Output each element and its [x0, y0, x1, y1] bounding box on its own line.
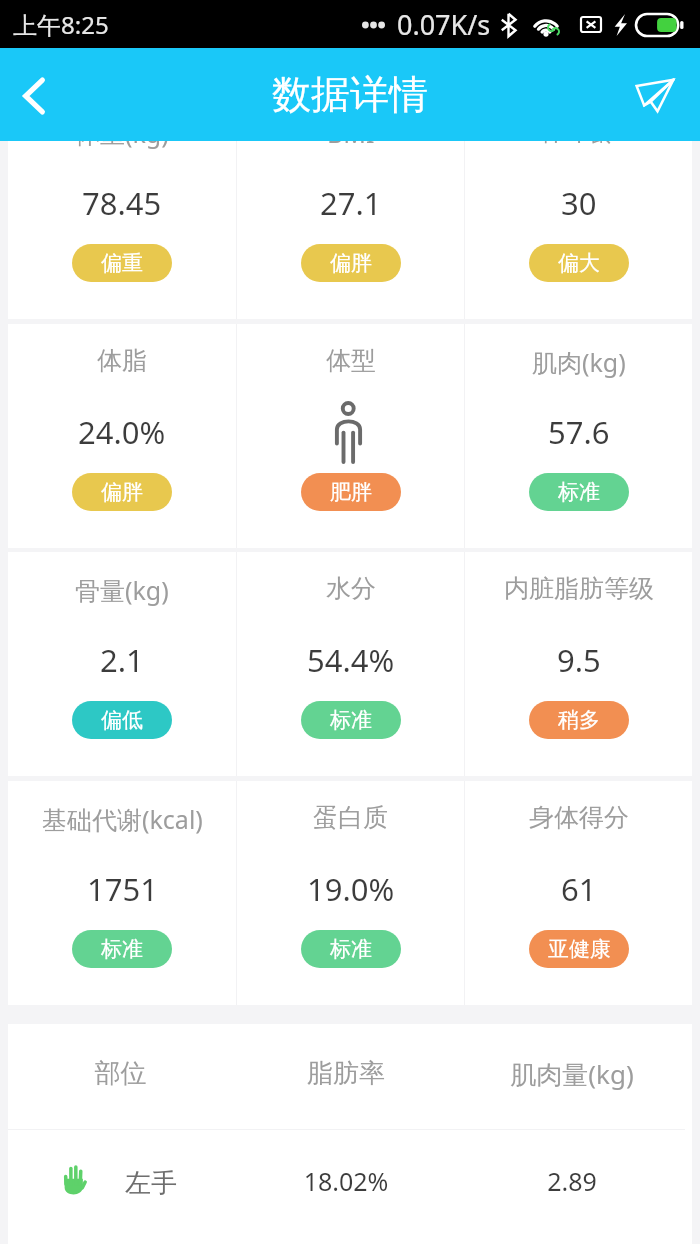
- staticText: 肌肉(kg): [532, 345, 626, 379]
- staticText: 偏胖: [330, 250, 372, 276]
- staticText: 标准: [558, 479, 600, 505]
- staticText: 0.07K/s: [397, 6, 491, 43]
- staticText: 标准: [101, 936, 143, 962]
- button[interactable]: 体脂: [8, 324, 236, 548]
- staticText: 18.02%: [233, 1164, 459, 1198]
- button[interactable]: Share: [620, 48, 700, 141]
- button[interactable]: 体重(kg): [8, 141, 236, 319]
- staticText: 偏低: [101, 707, 143, 733]
- button[interactable]: 体型: [237, 324, 464, 548]
- staticText: 稍多: [558, 707, 600, 733]
- staticText: 9.5: [557, 639, 601, 681]
- staticText: 偏重: [101, 250, 143, 276]
- staticText: 2.89: [459, 1164, 685, 1198]
- staticText: 体重(kg): [75, 141, 169, 150]
- staticText: 身体得分: [529, 802, 629, 833]
- staticText: 肥胖: [330, 479, 372, 505]
- button[interactable]: BMI: [237, 141, 464, 319]
- staticText: 78.45: [82, 182, 162, 224]
- staticText: 偏大: [558, 250, 600, 276]
- button[interactable]: Back: [0, 48, 68, 141]
- staticText: 左手: [125, 1167, 177, 1200]
- staticText: BMI: [327, 141, 375, 150]
- staticText: 水分: [326, 573, 376, 604]
- staticText: 1751: [87, 868, 158, 910]
- staticText: 基础代谢(kcal): [42, 802, 203, 836]
- staticText: 体脂: [97, 345, 147, 376]
- staticText: 亚健康: [548, 936, 611, 962]
- button[interactable]: 身体得分: [465, 781, 692, 1005]
- staticText: 54.4%: [307, 639, 395, 681]
- button[interactable]: 水分: [237, 552, 464, 776]
- staticText: 数据详情: [272, 70, 428, 119]
- button[interactable]: 基础代谢(kcal): [8, 781, 236, 1005]
- staticText: 蛋白质: [313, 802, 388, 833]
- staticText: 57.6: [548, 411, 610, 453]
- button[interactable]: 肌肉(kg): [465, 324, 692, 548]
- button[interactable]: 蛋白质: [237, 781, 464, 1005]
- staticText: 2.1: [100, 639, 144, 681]
- staticText: 肌肉量(kg): [459, 1056, 685, 1092]
- staticText: 标准: [330, 936, 372, 962]
- button[interactable]: 左手: [8, 1137, 685, 1224]
- staticText: 体年龄: [541, 141, 616, 147]
- button[interactable]: 体年龄: [465, 141, 692, 319]
- staticText: 61: [561, 868, 597, 910]
- staticText: 脂肪率: [233, 1057, 459, 1090]
- staticText: 骨量(kg): [75, 573, 169, 607]
- staticText: 24.0%: [78, 411, 166, 453]
- staticText: 30: [561, 182, 597, 224]
- staticText: 部位: [8, 1057, 233, 1090]
- button[interactable]: 内脏脂肪等级: [465, 552, 692, 776]
- staticText: 27.1: [320, 182, 382, 224]
- staticText: 上午8:25: [13, 8, 109, 41]
- staticText: 19.0%: [307, 868, 395, 910]
- staticText: 内脏脂肪等级: [504, 573, 654, 604]
- staticText: 体型: [326, 345, 376, 376]
- staticText: 标准: [330, 707, 372, 733]
- staticText: 偏胖: [101, 479, 143, 505]
- button[interactable]: 骨量(kg): [8, 552, 236, 776]
